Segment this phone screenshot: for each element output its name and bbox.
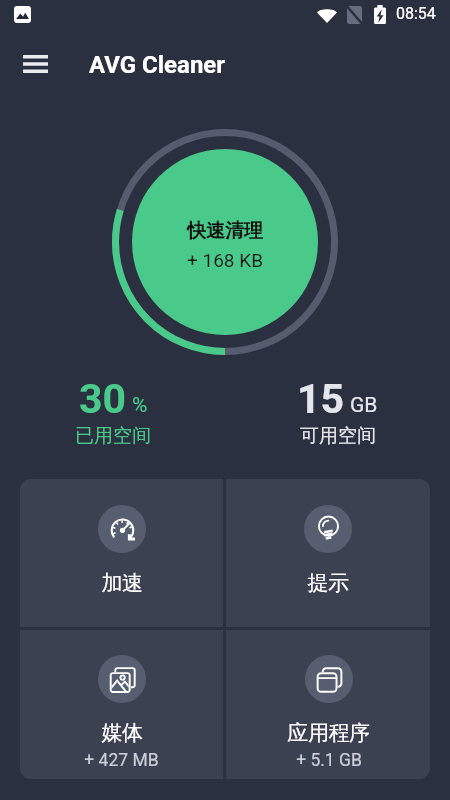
button[interactable]: 媒体 [20,630,223,779]
staticText: 加速 [101,570,143,596]
button[interactable]: 提示 [226,479,430,627]
staticText: 08:54 [396,4,436,23]
staticText: 30 [79,375,127,423]
button[interactable]: 应用程序 [226,630,430,779]
staticText: AVG Cleaner [89,51,226,79]
staticText: 已用空间 [75,424,151,448]
button[interactable]: 加速 [20,479,223,627]
staticText: 15 [297,375,345,423]
staticText: 提示 [307,570,349,596]
staticText: + 427 MB [84,750,159,771]
button[interactable]: 快速清理 [132,149,318,335]
staticText: 可用空间 [300,424,376,448]
staticText: + 5.1 GB [296,750,362,771]
staticText: GB [350,393,378,418]
staticText: % [132,393,148,418]
staticText: 媒体 [101,720,143,746]
button[interactable]: Open navigation menu [11,40,59,88]
staticText: 应用程序 [287,720,370,746]
staticText: + 168 KB [187,249,263,271]
staticText: 快速清理 [187,219,263,243]
